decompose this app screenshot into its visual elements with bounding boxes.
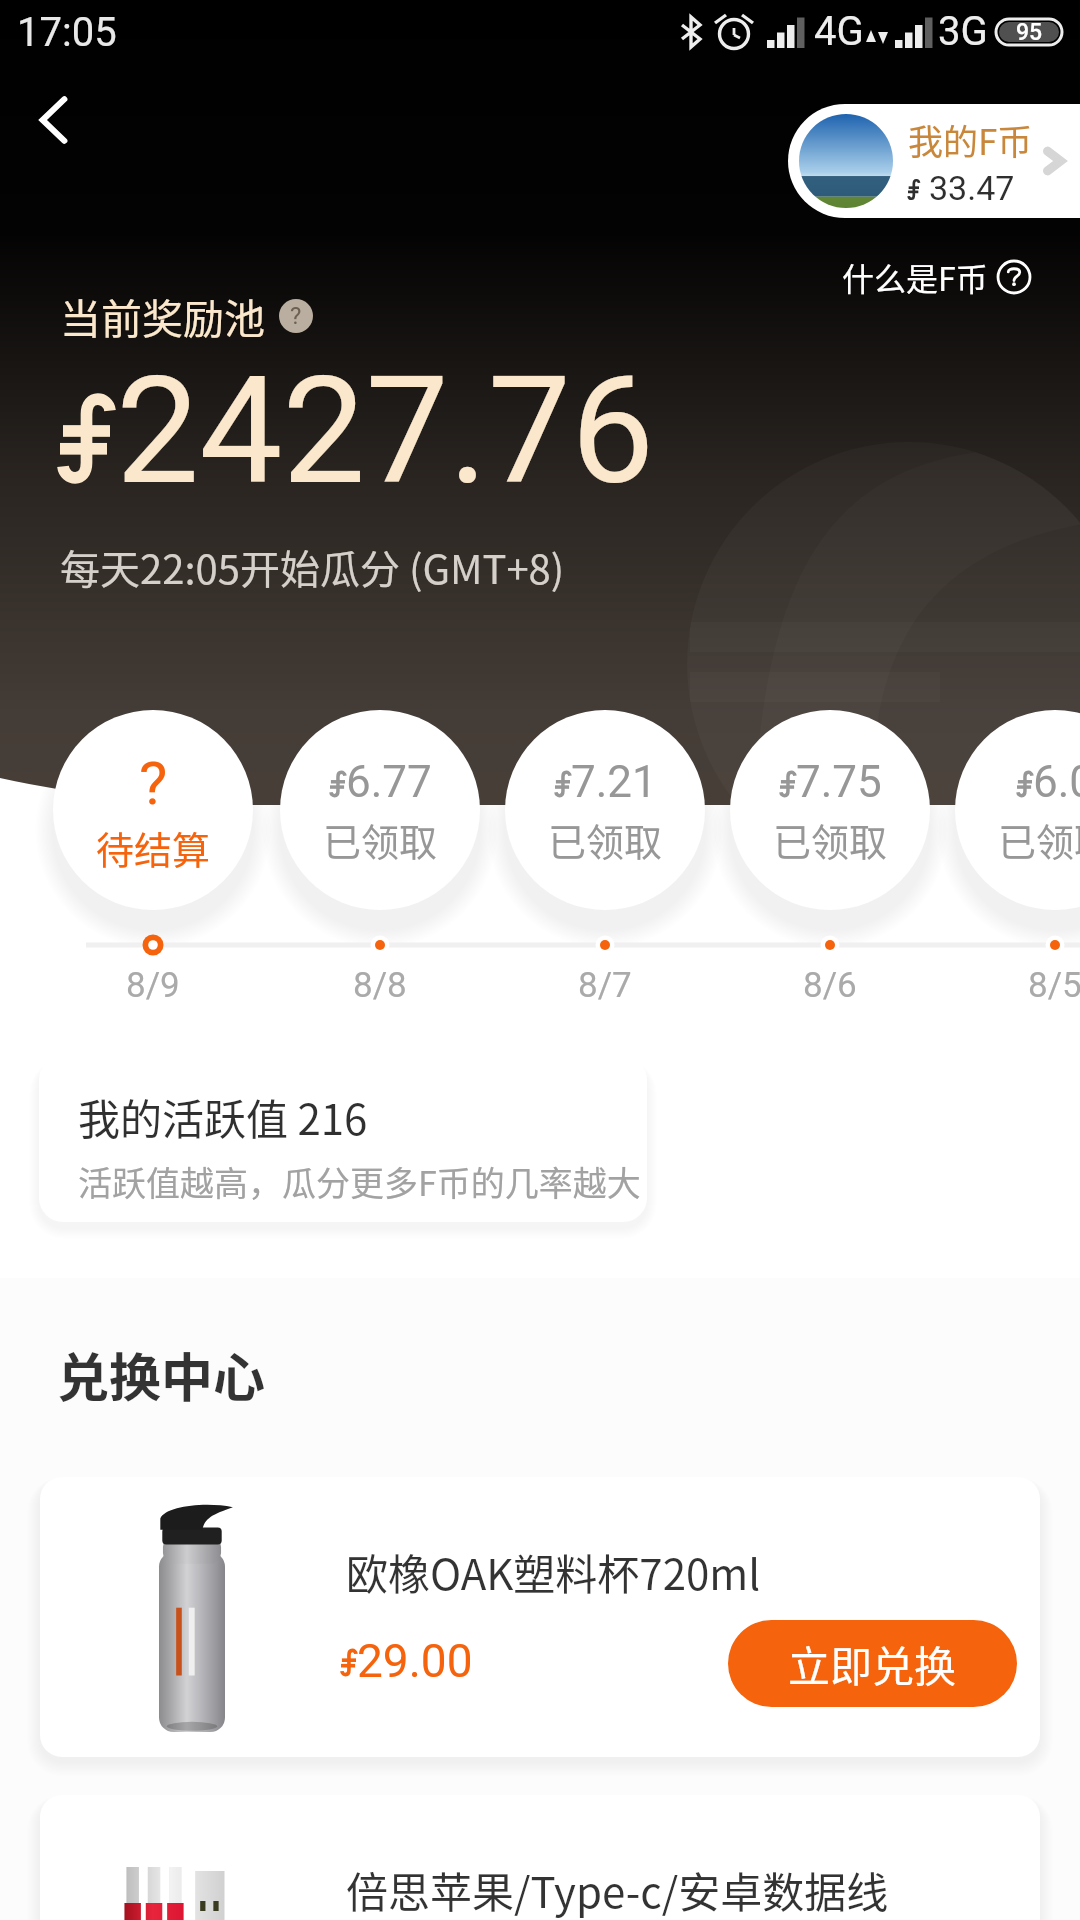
staticText: 什么是F币 [842,254,988,300]
staticText: 已领取 [773,812,888,867]
staticText: 每天22:05开始瓜分 (GMT+8) [60,538,565,596]
staticText: 兑换中心 [57,1337,266,1412]
staticText: 8/5 [1028,965,1080,1006]
staticText: 已领取 [548,812,663,867]
staticText: 我的活跃值 216 [78,1086,368,1147]
button[interactable] [39,1056,647,1222]
staticText: 当前奖励池 [60,286,265,345]
staticText: 8/7 [578,965,632,1006]
button[interactable]: 什么是F币 [838,250,1036,304]
staticText: 7.75 [796,756,882,808]
staticText: 欧橡OAK塑料杯720ml [346,1541,761,1602]
button[interactable]: 7.75 [730,710,930,910]
staticText: 8/9 [126,965,180,1006]
staticText: ? [290,302,302,330]
staticText: 33.47 [929,168,1015,208]
staticText: 29.00 [357,1634,473,1688]
button[interactable]: 6.0 [955,710,1080,910]
staticText: 2427.76 [116,345,655,518]
button[interactable]: 6.77 [280,710,480,910]
staticText: 7.21 [571,756,657,808]
button[interactable]: 立即兑换 [728,1620,1017,1707]
staticText: 已领取 [998,812,1080,867]
staticText: 3G [938,8,988,55]
staticText: 17:05 [17,9,117,56]
staticText: 6.0 [1033,756,1080,808]
button[interactable]: 欧橡OAK塑料杯720ml [40,1477,1040,1757]
button[interactable]: 7.21 [505,710,705,910]
staticText: 6.77 [346,756,432,808]
button[interactable]: 我的F币 [788,104,1080,218]
staticText: 待结算 [96,820,211,875]
staticText: 立即兑换 [788,1633,957,1694]
staticText: 已领取 [323,812,438,867]
staticText: ? [139,748,168,818]
button[interactable]: 倍思苹果/Type-c/安卓数据线 [40,1795,1040,1920]
staticText: 活跃值越高，瓜分更多F币的几率越大 [78,1157,641,1206]
button[interactable]: What is the reward pool [279,299,313,333]
staticText: 4G [814,8,864,55]
staticText: 8/8 [353,965,407,1006]
staticText: 我的F币 [908,114,1033,165]
button[interactable]: Back [6,72,102,168]
button[interactable]: ? [53,710,253,910]
staticText: 倍思苹果/Type-c/安卓数据线 [346,1859,889,1920]
staticText: 8/6 [803,965,857,1006]
staticText: 95 [1016,19,1043,45]
